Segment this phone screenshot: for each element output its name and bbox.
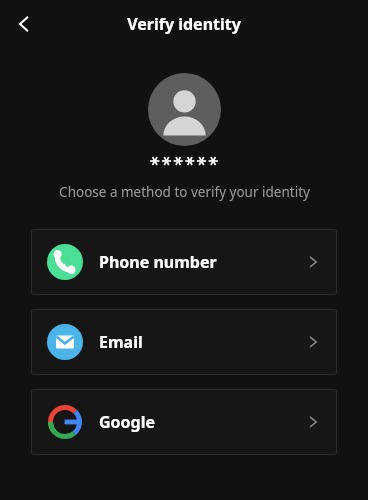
button[interactable]: Phone number — [31, 229, 337, 295]
staticText: Choose a method to verify your identity — [59, 183, 310, 201]
staticText: Email — [99, 331, 143, 353]
staticText: Google — [99, 411, 156, 433]
staticText: Phone number — [99, 251, 217, 273]
button[interactable]: Email — [31, 309, 337, 375]
button[interactable]: Google — [31, 389, 337, 455]
button[interactable]: Back — [4, 4, 44, 44]
staticText: Verify identity — [127, 13, 241, 35]
